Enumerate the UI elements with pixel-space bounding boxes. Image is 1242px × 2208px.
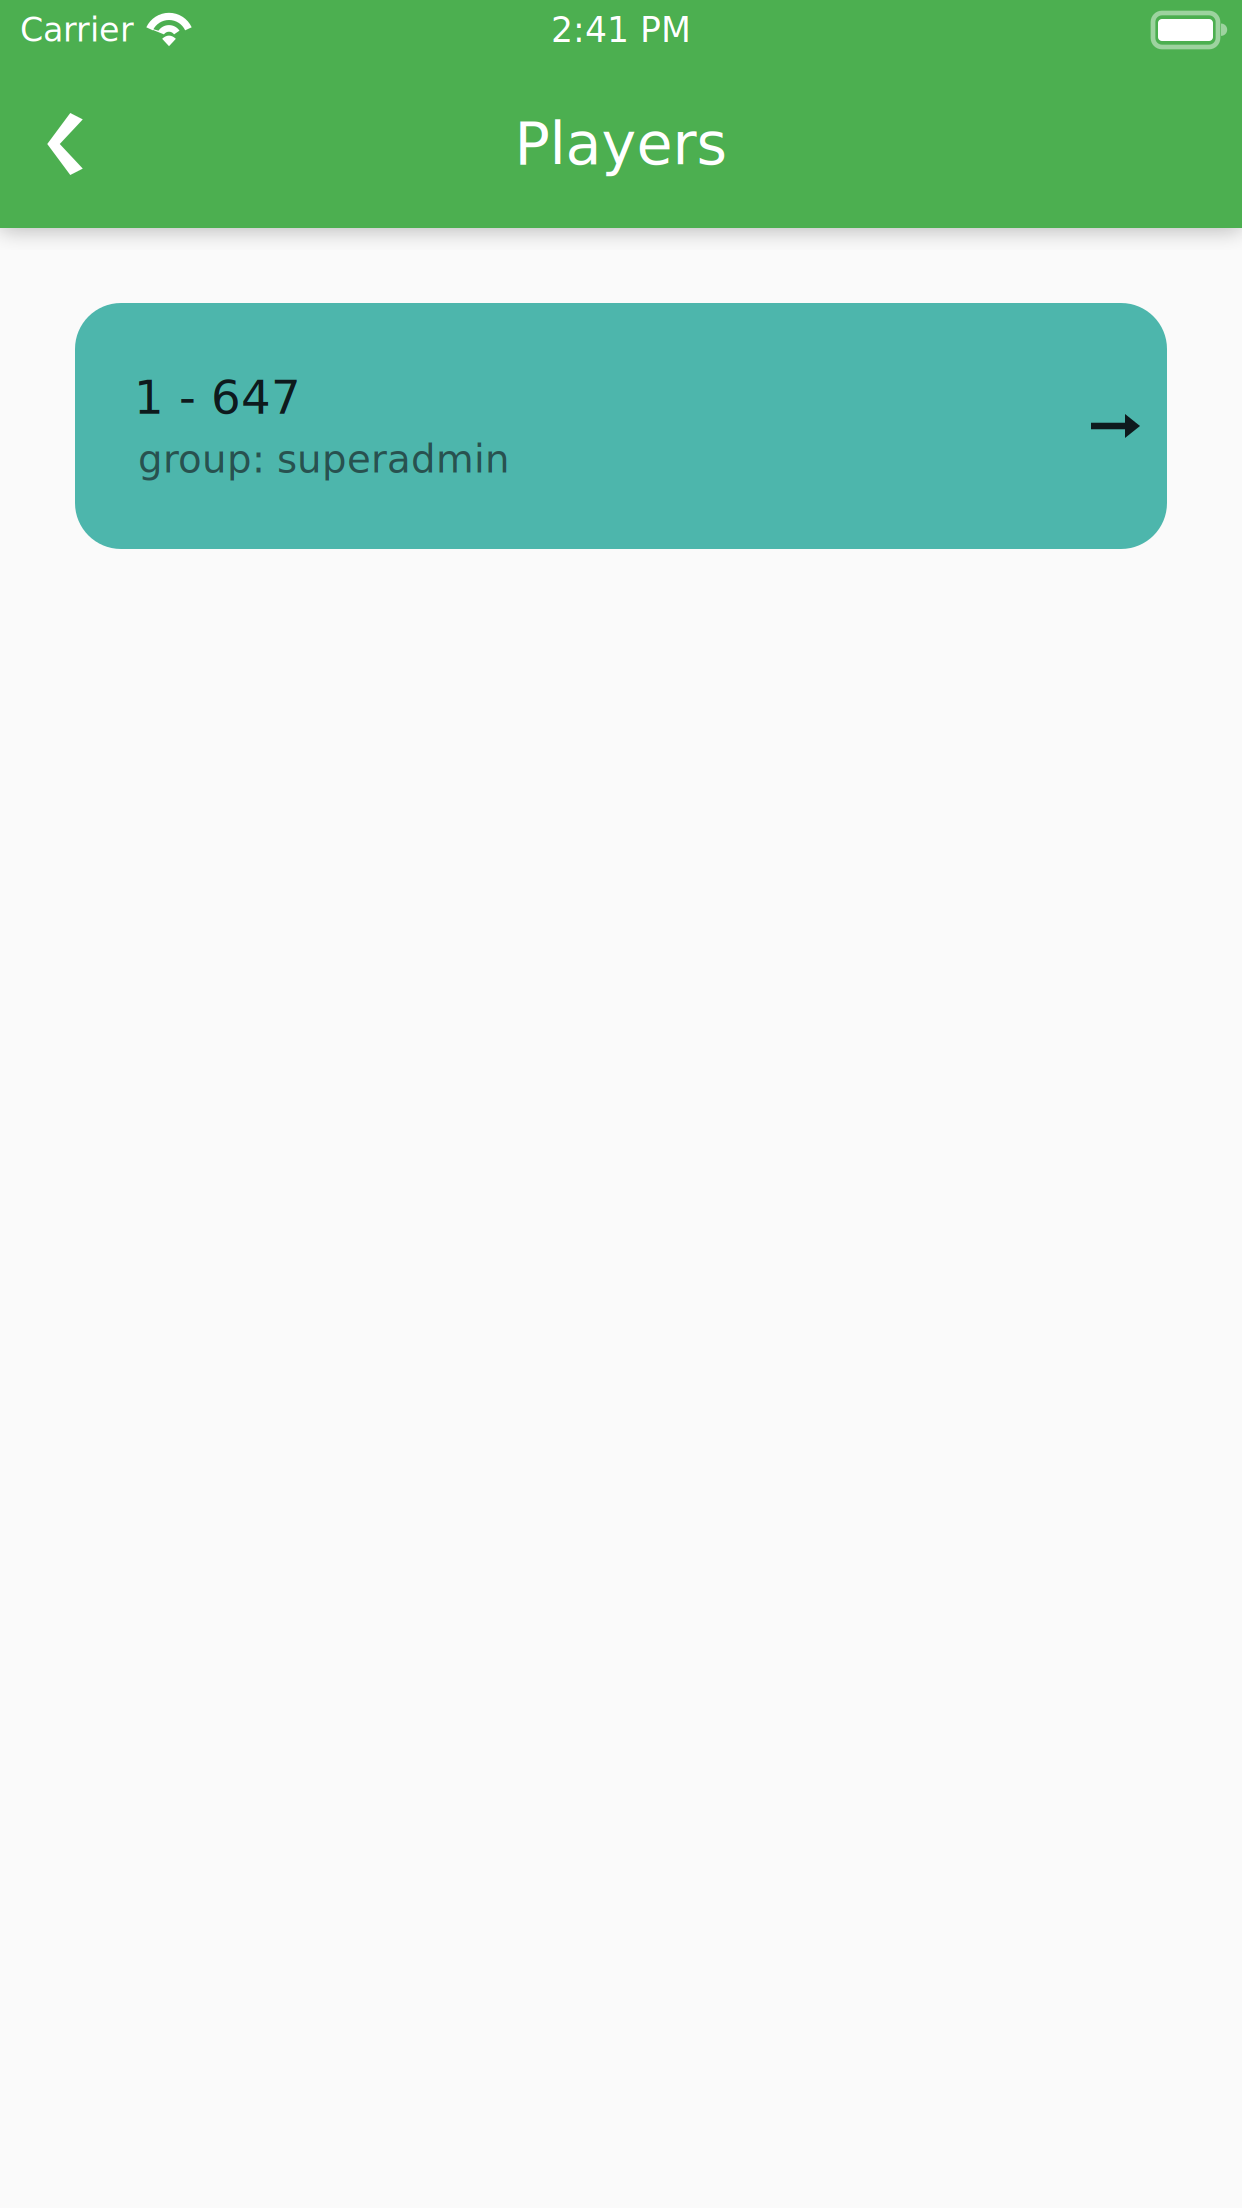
- staticText: group: superadmin: [138, 437, 510, 482]
- staticText: 1 - 647: [134, 370, 301, 425]
- staticText: Players: [514, 110, 727, 178]
- button[interactable]: 1 - 647: [75, 303, 1167, 549]
- staticText: 2:41 PM: [551, 10, 691, 50]
- staticText: Carrier: [20, 11, 134, 49]
- button[interactable]: Back: [15, 89, 115, 199]
